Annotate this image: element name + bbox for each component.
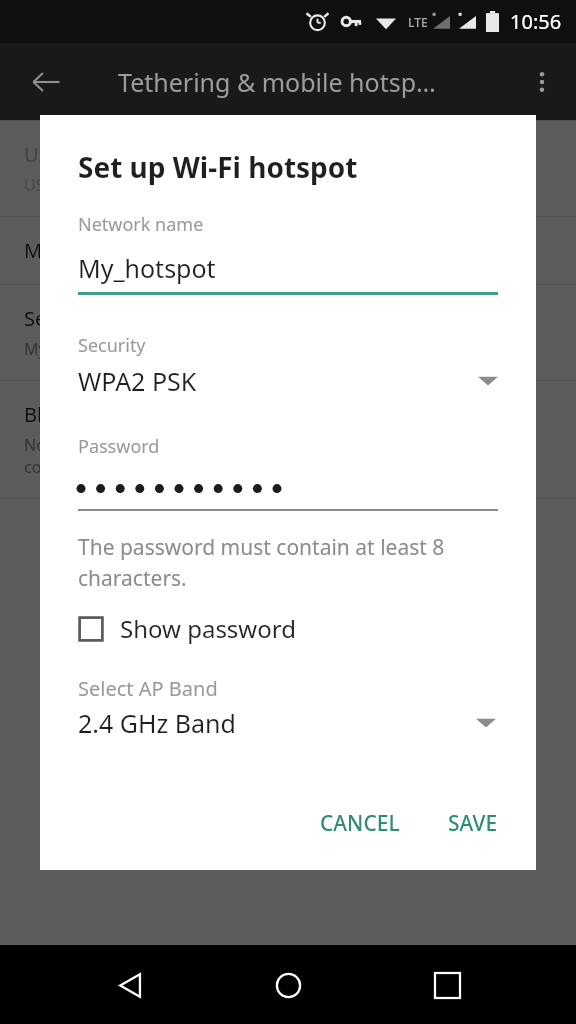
staticText: WPA2 PSK (78, 364, 478, 398)
staticText: 10:56 (510, 8, 562, 35)
button[interactable]: Back (101, 956, 159, 1014)
staticText: Show password (120, 612, 296, 645)
button[interactable] (78, 479, 498, 511)
staticText: Tethering & mobile hotsp… (118, 65, 436, 99)
staticText: CANCEL (320, 809, 400, 838)
staticText: Bluetooth tethering (24, 401, 210, 428)
button[interactable]: Home (259, 956, 317, 1014)
staticText: Not sharing this phone's internet connec… (24, 434, 272, 478)
button[interactable]: 2.4 GHz Band (78, 706, 496, 740)
staticText: Password (78, 434, 160, 459)
staticText: Security (78, 333, 146, 358)
button[interactable]: Navigate up (20, 56, 72, 108)
staticText: LTE (408, 14, 428, 30)
staticText: USB tethering (24, 141, 156, 168)
staticText: My_hotspot WPA2 PSK portable (24, 338, 260, 360)
staticText: USB not connected (24, 174, 168, 196)
button[interactable]: My_hotspot (78, 251, 498, 295)
button[interactable]: More options (516, 56, 568, 108)
staticText: SAVE (448, 809, 498, 838)
staticText: Mobile hotspot (24, 237, 167, 264)
staticText: Set up Wi-Fi hotspot (78, 148, 358, 186)
staticText: Set up Wi-Fi hotspot (24, 305, 213, 332)
button[interactable]: Show password (76, 612, 498, 645)
button[interactable]: SAVE (432, 799, 514, 848)
button[interactable]: Recent apps (418, 956, 476, 1014)
staticText: 2.4 GHz Band (78, 706, 476, 740)
button[interactable]: CANCEL (304, 799, 416, 848)
staticText: Select AP Band (78, 675, 218, 702)
staticText: Network name (78, 212, 204, 237)
staticText: The password must contain at least 8 cha… (78, 533, 445, 592)
button[interactable]: WPA2 PSK (78, 364, 498, 398)
staticText: My_hotspot (78, 251, 216, 285)
